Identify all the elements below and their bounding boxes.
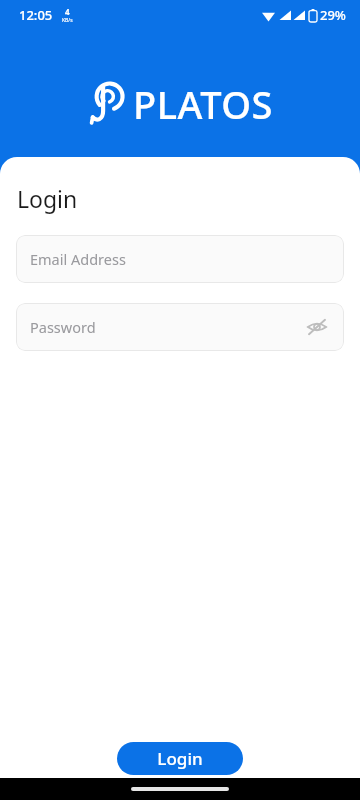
staticText: 4 bbox=[65, 6, 70, 17]
staticText: Password bbox=[30, 317, 304, 337]
staticText: 12:05 bbox=[19, 6, 53, 24]
staticText: Email Address bbox=[30, 249, 330, 269]
button[interactable]: Password bbox=[16, 303, 344, 351]
button[interactable]: Show password bbox=[304, 314, 330, 340]
staticText: PLATOS bbox=[133, 78, 273, 130]
staticText: KB/s bbox=[62, 17, 73, 24]
button[interactable]: Email Address bbox=[16, 235, 344, 283]
button[interactable]: Login bbox=[117, 742, 243, 775]
staticText: Login bbox=[17, 183, 78, 214]
staticText: 29% bbox=[320, 6, 346, 24]
staticText: Login bbox=[157, 747, 203, 770]
